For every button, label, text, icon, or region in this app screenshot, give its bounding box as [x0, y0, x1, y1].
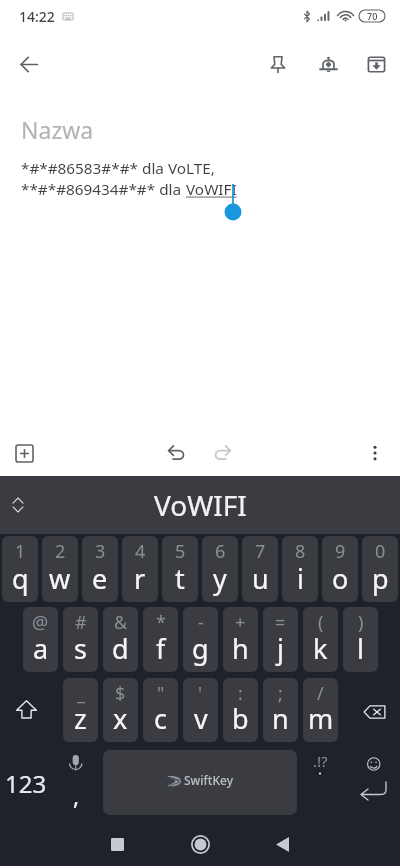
staticText: 70 [367, 10, 378, 22]
staticText: k [313, 630, 328, 667]
button[interactable]: $ [103, 678, 138, 742]
button[interactable]: Back [9, 44, 49, 84]
button[interactable]: Back [262, 824, 302, 864]
staticText: 4 [135, 539, 146, 564]
staticText: v [194, 700, 208, 737]
button[interactable]: 3 [82, 536, 118, 602]
button[interactable]: Add reminder [308, 44, 348, 84]
button[interactable]: VoWIFI [154, 486, 247, 524]
staticText: h [232, 630, 249, 667]
staticText: r [134, 560, 146, 597]
staticText: q [12, 560, 29, 597]
staticText: x [113, 700, 128, 737]
staticText: / [317, 681, 324, 706]
button[interactable]: Expand suggestions [0, 485, 38, 525]
staticText: ; [278, 681, 283, 706]
button[interactable]: 0 [362, 536, 398, 602]
staticText: 7 [255, 539, 266, 564]
button[interactable]: 1 [2, 536, 38, 602]
button[interactable]: ( [303, 607, 338, 672]
button[interactable]: More options [355, 433, 395, 473]
staticText: o [332, 560, 349, 597]
button[interactable]: ' [183, 678, 218, 742]
button[interactable]: 5 [162, 536, 198, 602]
staticText: j [277, 630, 284, 667]
button[interactable]: Archive [356, 44, 396, 84]
staticText: 123 [5, 767, 47, 800]
staticText: 6 [215, 539, 226, 564]
staticText: VoWIFI [154, 486, 247, 524]
button[interactable]: ) [343, 607, 378, 672]
button[interactable]: Backspace [348, 680, 400, 744]
button[interactable]: Emoji and enter [344, 750, 396, 815]
button[interactable]: * [143, 607, 178, 672]
button[interactable]: 2 [42, 536, 78, 602]
staticText: u [252, 560, 269, 597]
staticText: # [75, 610, 87, 635]
button[interactable]: Punctuation [300, 750, 344, 815]
staticText: 5 [175, 539, 186, 564]
button[interactable]: Home [180, 824, 220, 864]
button[interactable]: 6 [202, 536, 238, 602]
button[interactable]: @ [23, 607, 58, 672]
staticText: _ [77, 681, 85, 706]
staticText: a [33, 630, 49, 667]
staticText: e [92, 560, 108, 597]
button[interactable]: # [63, 607, 98, 672]
button[interactable]: & [103, 607, 138, 672]
staticText: g [192, 630, 209, 667]
staticText: t [175, 560, 185, 597]
button[interactable]: Pin note [258, 44, 298, 84]
button[interactable]: Add [4, 433, 44, 473]
staticText: $ [115, 681, 126, 706]
staticText: y [213, 560, 227, 597]
staticText: b [232, 700, 249, 737]
staticText: & [114, 610, 128, 635]
button[interactable]: Space [103, 750, 297, 815]
staticText: 1 [15, 539, 26, 564]
button[interactable]: - [183, 607, 218, 672]
button[interactable]: 7 [242, 536, 278, 602]
staticText: @ [32, 610, 49, 635]
staticText: n [272, 700, 289, 737]
button[interactable]: _ [63, 678, 98, 742]
staticText: d [112, 630, 129, 667]
staticText: *#*#86583#*#* dla VoLTE, [21, 158, 215, 179]
staticText: " [157, 681, 165, 706]
staticText: z [74, 700, 87, 737]
staticText: ( [318, 610, 324, 635]
staticText: 3 [95, 539, 106, 564]
staticText: **#*#869434#*#* dla [21, 179, 186, 200]
staticText: , [73, 780, 80, 811]
staticText: Nazwa [21, 114, 94, 145]
button[interactable]: Undo [156, 433, 196, 473]
staticText: 14:22 [19, 7, 55, 26]
staticText: 9 [335, 539, 346, 564]
staticText: i [297, 560, 304, 597]
button[interactable]: 4 [122, 536, 158, 602]
button[interactable]: : [223, 678, 258, 742]
staticText: p [372, 560, 389, 597]
staticText: 2 [55, 539, 66, 564]
button[interactable]: / [303, 678, 338, 742]
button[interactable]: + [223, 607, 258, 672]
staticText: ' [198, 681, 203, 706]
staticText: s [74, 630, 87, 667]
button[interactable]: 123 [0, 750, 52, 815]
button[interactable]: 8 [282, 536, 318, 602]
button[interactable]: ; [263, 678, 298, 742]
button[interactable]: = [263, 607, 298, 672]
button[interactable]: " [143, 678, 178, 742]
button[interactable]: Shift [0, 678, 52, 742]
button[interactable]: Recent apps [97, 824, 137, 864]
staticText: 0 [375, 539, 386, 564]
staticText: m [308, 700, 334, 737]
staticText: VoWIFI [186, 179, 237, 200]
button[interactable]: Redo [202, 433, 242, 473]
staticText: 8 [295, 539, 306, 564]
button[interactable]: Voice input [54, 750, 98, 815]
staticText: c [154, 700, 167, 737]
button[interactable]: 9 [322, 536, 358, 602]
staticText: ) [358, 610, 364, 635]
staticText: : [238, 681, 243, 706]
